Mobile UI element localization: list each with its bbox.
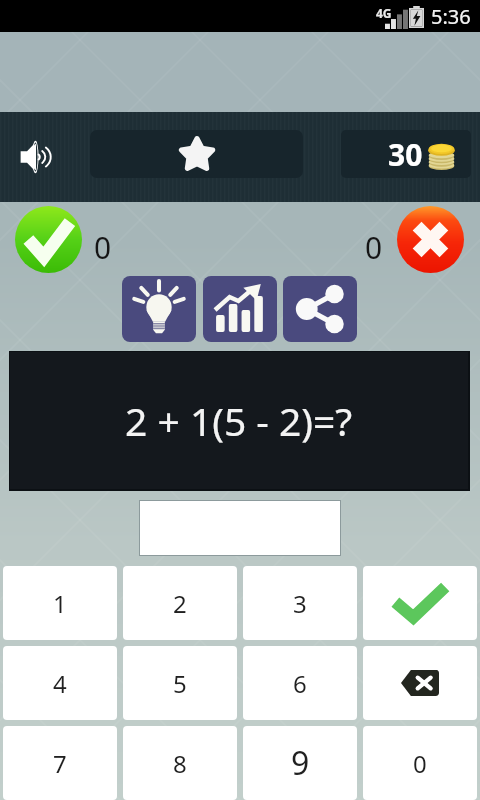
button[interactable]: 6 bbox=[243, 646, 357, 720]
button[interactable]: 1 bbox=[3, 566, 117, 640]
staticText: 3 bbox=[293, 587, 307, 620]
staticText: 2 bbox=[173, 587, 187, 620]
staticText: 6 bbox=[293, 667, 307, 700]
button[interactable]: Sound bbox=[6, 127, 66, 187]
staticText: 7 bbox=[53, 747, 67, 780]
staticText: 8 bbox=[173, 747, 187, 780]
staticText: 1 bbox=[53, 587, 67, 620]
button[interactable]: Hint bbox=[122, 276, 196, 342]
button[interactable]: Coins bbox=[341, 130, 471, 178]
button[interactable]: Wrong answers bbox=[397, 206, 464, 273]
button[interactable]: 3 bbox=[243, 566, 357, 640]
button[interactable]: 7 bbox=[3, 726, 117, 800]
staticText: 30 bbox=[388, 134, 423, 175]
button[interactable]: Share bbox=[283, 276, 357, 342]
button[interactable]: 5 bbox=[123, 646, 237, 720]
staticText: 4G bbox=[376, 5, 392, 21]
staticText: 2 + 1(5 - 2)=? bbox=[125, 394, 353, 447]
button[interactable]: Submit bbox=[363, 566, 477, 640]
button[interactable]: 9 bbox=[243, 726, 357, 800]
button[interactable]: 4 bbox=[3, 646, 117, 720]
button[interactable]: Correct answers bbox=[15, 206, 82, 273]
button[interactable]: Statistics bbox=[203, 276, 277, 342]
staticText: 0 bbox=[365, 227, 383, 268]
staticText: 0 bbox=[94, 227, 112, 268]
staticText: 9 bbox=[291, 741, 310, 785]
button[interactable]: 0 bbox=[363, 726, 477, 800]
button[interactable]: 8 bbox=[123, 726, 237, 800]
staticText: 0 bbox=[413, 747, 427, 780]
button[interactable]: Rate bbox=[90, 130, 303, 178]
staticText: 5:36 bbox=[431, 3, 471, 30]
button[interactable]: 2 bbox=[123, 566, 237, 640]
staticText: 5 bbox=[173, 667, 187, 700]
button[interactable]: Delete bbox=[363, 646, 477, 720]
staticText: 4 bbox=[53, 667, 67, 700]
